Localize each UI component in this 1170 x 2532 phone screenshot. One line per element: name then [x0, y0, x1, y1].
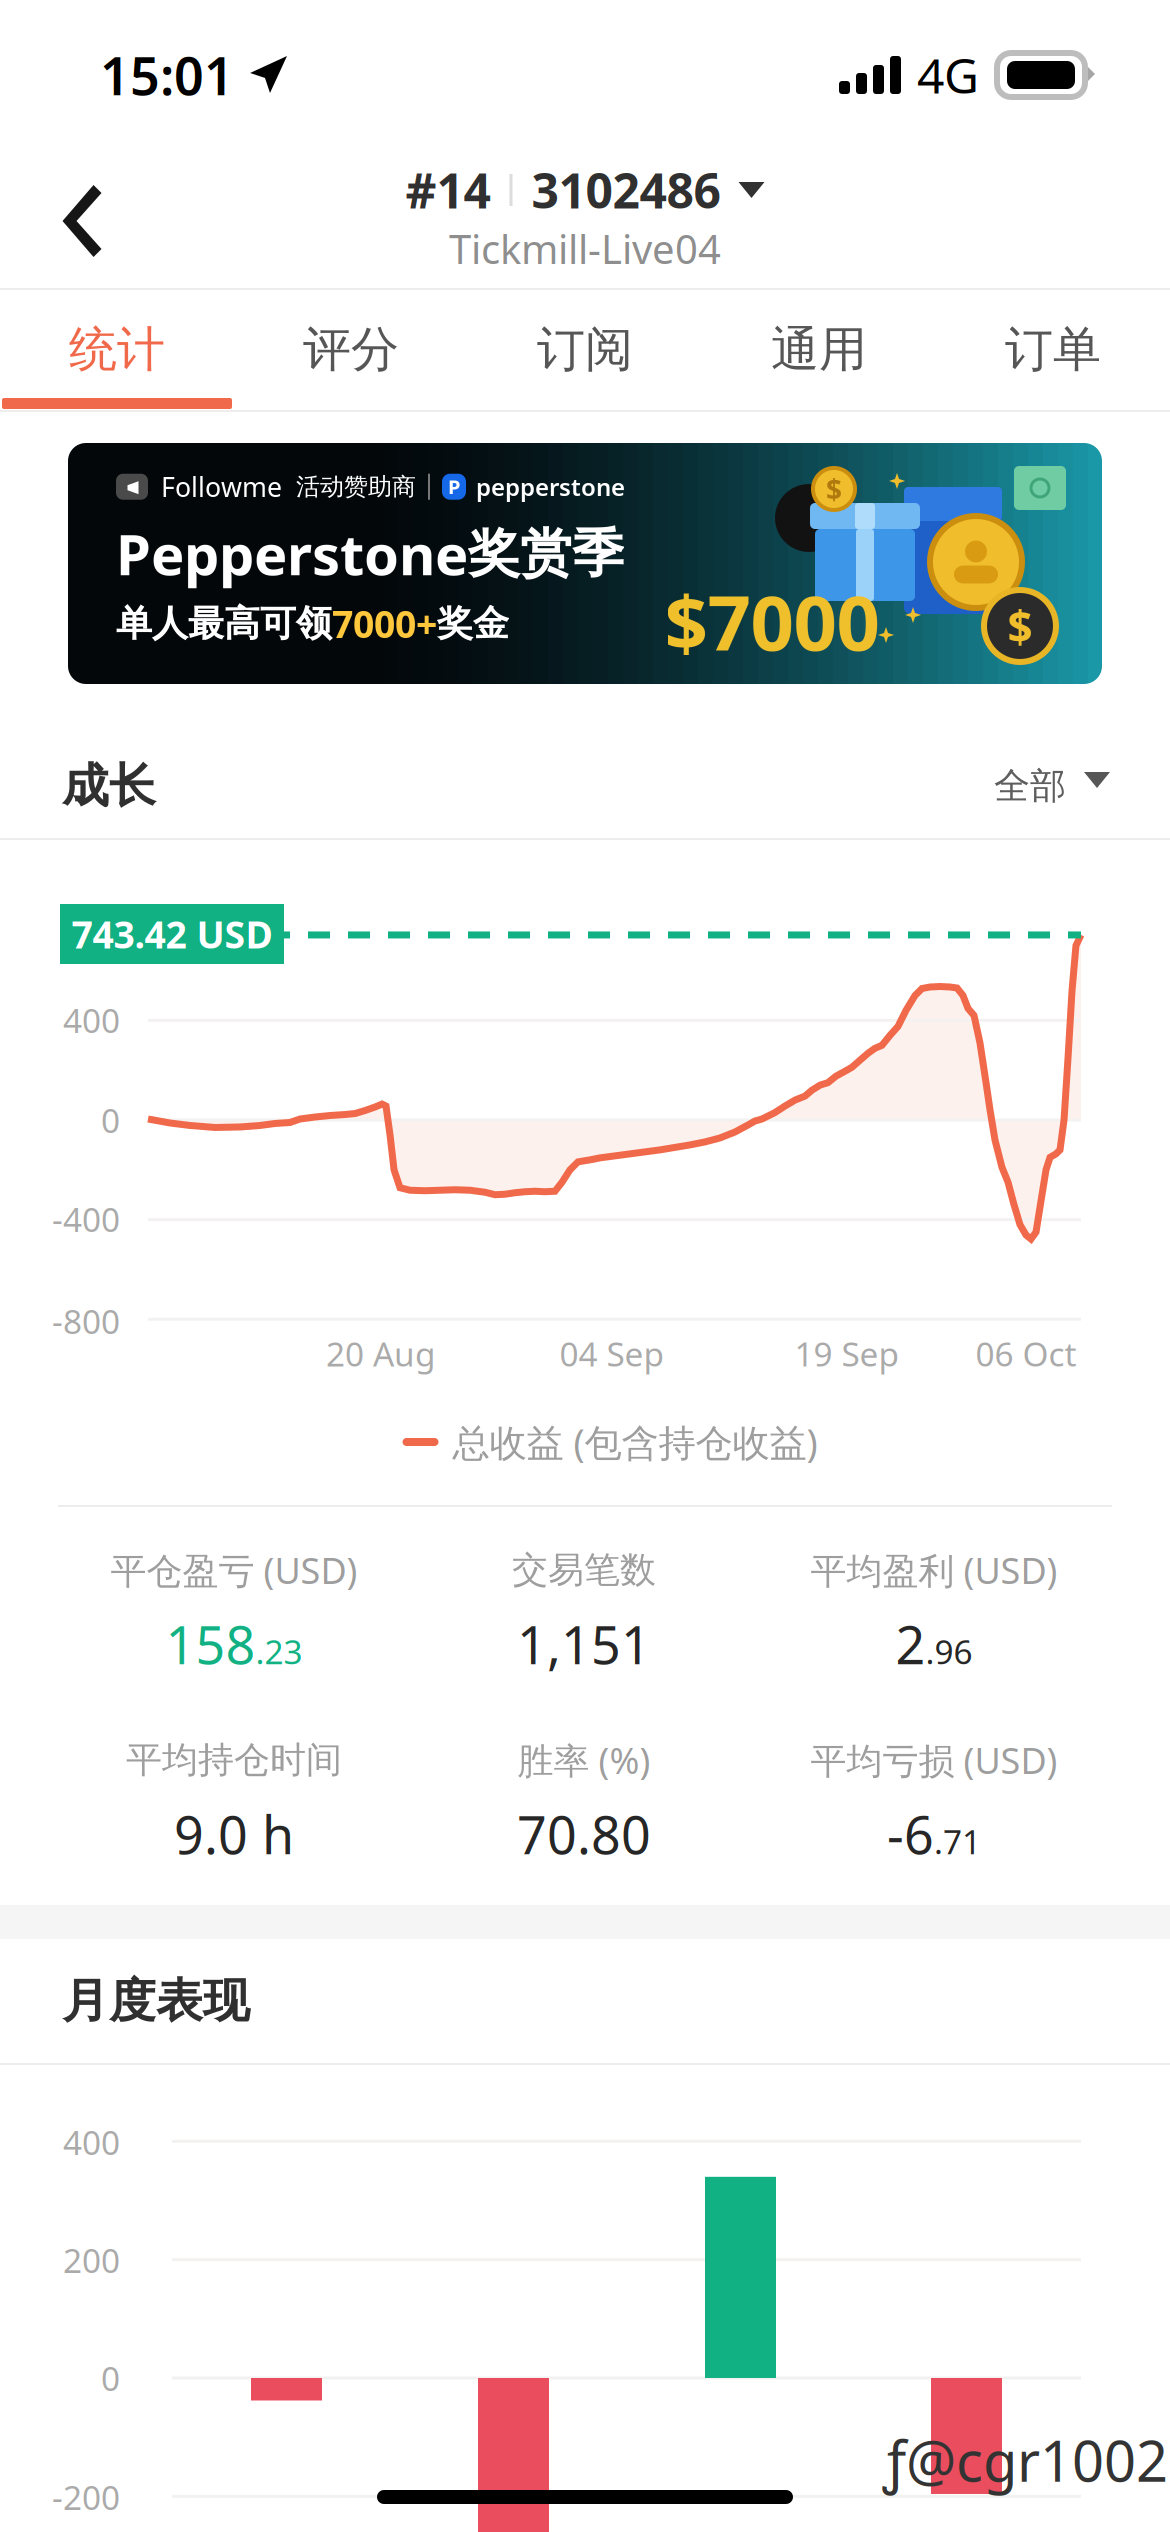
staticText: ƒ@cgr1002 [883, 2423, 1168, 2497]
staticText: .23 [255, 1629, 302, 1673]
staticText: 0 [101, 1098, 120, 1142]
staticText: -400 [52, 1197, 120, 1241]
staticText: 成长 [62, 757, 156, 815]
button[interactable]: 统计 [0, 290, 234, 410]
staticText: 订阅 [537, 320, 633, 379]
staticText: #14 [405, 158, 490, 222]
staticText: Followme [161, 469, 282, 504]
button[interactable]: 订阅 [468, 290, 702, 410]
staticText: pepperstone [476, 471, 625, 503]
button[interactable]: 评分 [234, 290, 468, 410]
staticText: $ [1007, 597, 1032, 655]
staticText: 15:01 [100, 40, 234, 110]
staticText: P [448, 473, 460, 500]
button[interactable]: #14 [405, 162, 764, 218]
staticText: Tickmill-Live04 [449, 222, 721, 275]
staticText: 平均持仓时间 [126, 1738, 342, 1782]
staticText: 4G [917, 43, 979, 107]
staticText: $ [826, 470, 842, 508]
staticText: 奖金 [437, 601, 509, 646]
staticText: -6 [887, 1799, 934, 1869]
staticText: 单人最高可领 [116, 601, 332, 646]
button[interactable]: Back [22, 156, 142, 286]
staticText: $7000 [664, 570, 879, 671]
staticText: 平均盈利 (USD) [810, 1546, 1057, 1594]
staticText: 全部 [994, 764, 1066, 808]
staticText: 400 [63, 2120, 120, 2164]
staticText: 订单 [1005, 320, 1101, 379]
staticText: 04 Sep [559, 1331, 664, 1376]
staticText: 743.42 USD [71, 909, 272, 959]
staticText: 统计 [69, 320, 165, 379]
staticText: 0 [101, 2356, 120, 2400]
staticText: 2 [895, 1609, 925, 1679]
button[interactable]: 全部 [994, 744, 1110, 828]
staticText: 9.0 h [174, 1799, 294, 1869]
button[interactable]: Pepperstone 奖赏季 promotion [0, 443, 1170, 684]
staticText: -800 [52, 1299, 120, 1343]
button[interactable]: 订单 [936, 290, 1170, 410]
staticText: 奖赏季 [468, 522, 624, 586]
staticText: 总收益 (包含持仓收益) [452, 1417, 817, 1467]
button[interactable]: 通用 [702, 290, 936, 410]
staticText: 评分 [303, 320, 399, 379]
staticText: .96 [925, 1629, 972, 1673]
staticText: 通用 [771, 320, 867, 379]
staticText: 20 Aug [326, 1331, 436, 1376]
staticText: .71 [934, 1819, 981, 1863]
staticText: 平均亏损 (USD) [810, 1736, 1057, 1784]
staticText: 19 Sep [794, 1331, 899, 1376]
staticText: 200 [63, 2238, 120, 2282]
staticText: 月度表现 [62, 1972, 250, 2030]
staticText: -200 [52, 2475, 120, 2519]
staticText: 7000+ [332, 599, 437, 648]
staticText: 活动赞助商 [296, 472, 416, 501]
staticText: 平仓盈亏 (USD) [110, 1546, 357, 1594]
staticText: 400 [63, 998, 120, 1042]
staticText: 70.80 [517, 1799, 651, 1869]
staticText: 06 Oct [975, 1331, 1076, 1376]
staticText: 胜率 (%) [517, 1736, 650, 1784]
staticText: 158 [165, 1609, 255, 1679]
staticText: Pepperstone [116, 516, 468, 591]
staticText: 3102486 [531, 158, 720, 222]
staticText: 交易笔数 [512, 1548, 656, 1592]
staticText: 1,151 [517, 1609, 651, 1679]
